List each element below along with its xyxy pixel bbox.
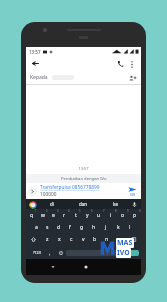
- button[interactable]: n: [101, 233, 113, 246]
- button[interactable]: h: [88, 221, 100, 233]
- staticText: 13:57: [29, 49, 41, 55]
- staticText: 5: [79, 209, 81, 213]
- staticText: Pembaikan dengan IVo: [61, 176, 107, 182]
- button[interactable]: Call: [115, 58, 126, 69]
- button[interactable]: f: [64, 221, 76, 233]
- button[interactable]: r: [59, 209, 70, 221]
- button[interactable]: Back: [48, 262, 58, 272]
- staticText: dan: [79, 201, 88, 207]
- staticText: ?123: [33, 250, 41, 255]
- button[interactable]: i: [105, 209, 117, 221]
- staticText: MAS: [117, 238, 133, 248]
- staticText: Kepada: [30, 74, 48, 81]
- button[interactable]: Expand options: [28, 187, 37, 196]
- button[interactable]: Emoji: [55, 247, 66, 258]
- button[interactable]: Shift: [26, 233, 41, 246]
- staticText: ,: [49, 250, 51, 256]
- staticText: m: [117, 236, 122, 243]
- button[interactable]: Home: [81, 262, 91, 272]
- button[interactable]: Voice input: [131, 201, 138, 208]
- staticText: l: [129, 224, 131, 231]
- staticText: IVO: [117, 248, 130, 258]
- button[interactable]: c: [65, 233, 77, 246]
- button[interactable]: Backspace: [125, 233, 141, 246]
- staticText: s: [46, 224, 49, 231]
- button[interactable]: j: [100, 221, 112, 233]
- staticText: k: [117, 224, 120, 231]
- staticText: o: [121, 212, 125, 219]
- staticText: 8: [115, 209, 117, 213]
- staticText: 6: [91, 209, 93, 213]
- staticText: q: [30, 212, 34, 219]
- staticText: z: [46, 236, 49, 243]
- staticText: n: [105, 236, 109, 243]
- button[interactable]: Enter: [119, 250, 139, 256]
- staticText: c: [70, 236, 73, 243]
- staticText: t: [75, 212, 77, 219]
- staticText: d: [57, 224, 61, 231]
- staticText: j: [105, 224, 107, 231]
- staticText: b: [93, 236, 97, 243]
- button[interactable]: x: [53, 233, 65, 246]
- button[interactable]: z: [41, 233, 53, 246]
- button[interactable]: k: [112, 221, 124, 233]
- staticText: v: [82, 236, 85, 243]
- button[interactable]: ,: [45, 247, 55, 258]
- staticText: 1: [35, 209, 37, 213]
- staticText: a: [35, 224, 38, 231]
- button[interactable]: a: [31, 221, 42, 233]
- staticText: r: [63, 212, 66, 219]
- button[interactable]: g: [76, 221, 88, 233]
- staticText: 100000: [40, 191, 57, 198]
- button[interactable]: q: [26, 209, 37, 221]
- staticText: 4: [68, 209, 70, 213]
- staticText: di: [50, 201, 54, 207]
- staticText: 9: [127, 209, 129, 213]
- button[interactable]: Add contact: [127, 73, 137, 83]
- button[interactable]: t: [70, 209, 81, 221]
- button[interactable]: Space: [66, 250, 118, 256]
- staticText: g: [80, 224, 84, 231]
- button[interactable]: d: [53, 221, 64, 233]
- staticText: 0: [139, 209, 141, 213]
- staticText: 7: [103, 209, 105, 213]
- staticText: y: [86, 212, 89, 219]
- button[interactable]: b: [89, 233, 101, 246]
- staticText: i: [110, 212, 112, 219]
- staticText: f: [69, 224, 71, 231]
- button[interactable]: Google: [29, 201, 36, 208]
- staticText: 2: [46, 209, 48, 213]
- staticText: Transferpulsa 0856778899: [40, 184, 100, 191]
- staticText: w: [41, 212, 45, 219]
- button[interactable]: e: [48, 209, 59, 221]
- button[interactable]: l: [124, 221, 136, 233]
- button[interactable]: dan: [67, 199, 99, 209]
- staticText: ke: [113, 201, 118, 207]
- staticText: h: [92, 224, 96, 231]
- button[interactable]: ke: [99, 199, 131, 209]
- button[interactable]: o: [117, 209, 129, 221]
- button[interactable]: v: [77, 233, 89, 246]
- staticText: 3: [57, 209, 59, 213]
- button[interactable]: u: [93, 209, 105, 221]
- staticText: u: [97, 212, 101, 219]
- button[interactable]: p: [129, 209, 141, 221]
- button[interactable]: More options: [127, 59, 137, 69]
- button[interactable]: Back: [30, 58, 41, 69]
- button[interactable]: Send: [126, 186, 139, 197]
- button[interactable]: y: [81, 209, 93, 221]
- staticText: SMS: [130, 193, 136, 197]
- staticText: 13:57: [78, 166, 89, 171]
- staticText: p: [133, 212, 137, 219]
- button[interactable]: di: [36, 199, 67, 209]
- staticText: e: [52, 212, 55, 219]
- staticText: x: [58, 236, 61, 243]
- button[interactable]: w: [37, 209, 48, 221]
- button[interactable]: m: [113, 233, 125, 246]
- button[interactable]: ?123: [28, 247, 45, 258]
- button[interactable]: s: [42, 221, 53, 233]
